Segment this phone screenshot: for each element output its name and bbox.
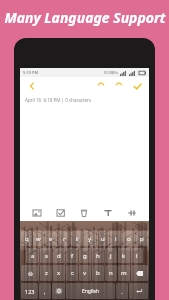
staticText: j xyxy=(110,252,112,260)
button[interactable]: 123 xyxy=(21,283,38,299)
button[interactable]: p xyxy=(136,231,148,246)
button[interactable]: v xyxy=(79,265,91,281)
button[interactable]: English xyxy=(66,283,115,299)
button[interactable]: h xyxy=(92,248,104,263)
button[interactable]: Checklist xyxy=(54,206,68,220)
staticText: n xyxy=(109,269,113,277)
button[interactable]: f xyxy=(66,248,78,263)
staticText: Many Language Support xyxy=(4,8,166,27)
button[interactable]: Text format xyxy=(101,206,115,220)
staticText: t xyxy=(76,235,79,243)
button[interactable]: Back xyxy=(25,79,39,93)
button[interactable]: k xyxy=(118,248,130,263)
button[interactable]: Backspace xyxy=(131,265,148,281)
button[interactable]: Settings xyxy=(52,283,65,299)
button[interactable]: , xyxy=(39,283,51,299)
staticText: April 16 6:18 PM | 0 characters xyxy=(25,97,92,103)
button[interactable]: r xyxy=(58,231,70,246)
staticText: o xyxy=(127,235,131,243)
staticText: 5:39 PM xyxy=(23,70,39,75)
button[interactable]: e xyxy=(45,231,57,246)
staticText: r xyxy=(63,235,66,243)
staticText: c xyxy=(71,269,74,277)
staticText: f xyxy=(71,252,74,260)
staticText: i xyxy=(115,235,117,243)
button[interactable]: c xyxy=(66,265,78,281)
staticText: b xyxy=(96,269,100,277)
button[interactable]: . xyxy=(116,283,128,299)
button[interactable]: d xyxy=(53,248,65,263)
staticText: English xyxy=(82,288,100,295)
staticText: k xyxy=(122,252,126,260)
button[interactable]: q xyxy=(21,231,32,246)
staticText: y xyxy=(88,235,92,243)
staticText: v xyxy=(83,269,87,277)
staticText: 123 xyxy=(25,288,35,295)
button[interactable]: w xyxy=(33,231,44,246)
staticText: m xyxy=(121,269,127,277)
button[interactable]: Delete xyxy=(77,206,91,220)
button[interactable]: x xyxy=(53,265,65,281)
button[interactable]: Insert image xyxy=(30,206,44,220)
staticText: q xyxy=(25,235,29,243)
button[interactable]: y xyxy=(84,231,96,246)
staticText: g xyxy=(83,252,87,260)
button[interactable]: a xyxy=(26,248,39,263)
button[interactable]: t xyxy=(71,231,83,246)
staticText: u xyxy=(101,235,105,243)
staticText: . xyxy=(121,288,123,295)
button[interactable]: b xyxy=(92,265,104,281)
staticText: w xyxy=(36,235,41,243)
button[interactable]: Redo xyxy=(112,79,126,93)
button[interactable]: g xyxy=(79,248,91,263)
button[interactable]: i xyxy=(110,231,122,246)
button[interactable]: l xyxy=(131,248,143,263)
button[interactable]: u xyxy=(97,231,109,246)
button[interactable]: j xyxy=(105,248,117,263)
staticText: l xyxy=(136,252,138,260)
staticText: , xyxy=(44,288,46,295)
button[interactable]: Enter xyxy=(129,283,148,299)
staticText: x xyxy=(57,269,61,277)
staticText: h xyxy=(96,252,100,260)
button[interactable]: z xyxy=(40,265,52,281)
staticText: d xyxy=(57,252,61,260)
staticText: a xyxy=(31,252,35,260)
staticText: s xyxy=(45,252,48,260)
button[interactable]: o xyxy=(123,231,135,246)
button[interactable]: Undo xyxy=(94,79,108,93)
button[interactable]: Shift xyxy=(21,265,39,281)
staticText: p xyxy=(140,235,144,243)
button[interactable]: n xyxy=(105,265,117,281)
staticText: z xyxy=(45,269,48,277)
button[interactable]: m xyxy=(118,265,130,281)
staticText: 0.00B/s xyxy=(104,70,118,75)
button[interactable]: s xyxy=(40,248,52,263)
button[interactable]: More options xyxy=(125,206,139,220)
button[interactable]: Done xyxy=(130,79,144,93)
staticText: e xyxy=(49,235,53,243)
